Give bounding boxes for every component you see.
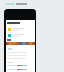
button[interactable] (6, 28, 35, 31)
button[interactable] (7, 39, 11, 41)
button[interactable] (6, 3, 27, 5)
button[interactable] (6, 34, 35, 37)
